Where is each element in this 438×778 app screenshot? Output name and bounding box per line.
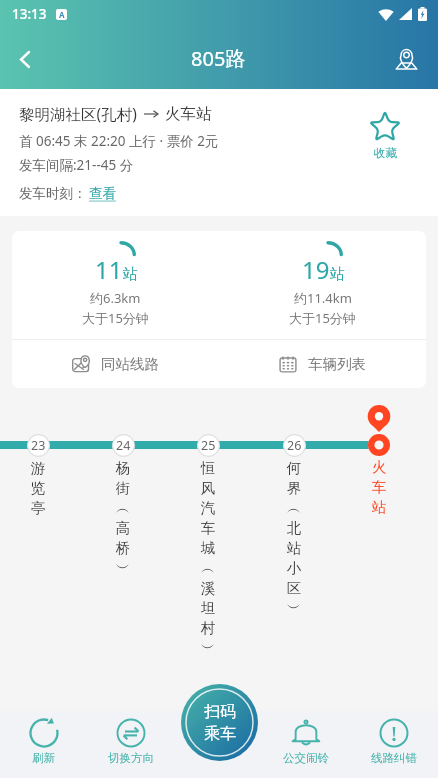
staticText: 26 xyxy=(287,437,302,454)
staticText: 24 xyxy=(116,437,131,454)
button[interactable]: 公交闹铃 xyxy=(262,711,350,778)
button[interactable]: 24 xyxy=(101,434,145,577)
staticText: 23 xyxy=(31,437,46,454)
staticText: 公交闹铃 xyxy=(283,751,329,765)
staticText: 站 xyxy=(123,265,138,284)
staticText: 约6.3km xyxy=(90,289,141,307)
button[interactable]: 火车站 xyxy=(357,405,401,516)
staticText: 约11.4km xyxy=(294,289,352,307)
staticText: 线路纠错 xyxy=(371,751,417,765)
button[interactable]: Back xyxy=(0,34,50,84)
button[interactable]: 车辆列表 xyxy=(219,340,426,388)
staticText: 19 xyxy=(302,253,330,286)
staticText: 黎明湖社区(孔村) xyxy=(19,103,137,124)
staticText: 11 xyxy=(95,253,123,286)
staticText: A xyxy=(59,9,65,20)
staticText: 刷新 xyxy=(32,751,55,765)
staticText: 站 xyxy=(330,265,345,284)
button[interactable]: 扫码 乘车 xyxy=(181,684,258,761)
button[interactable]: Favorite xyxy=(368,111,402,160)
staticText: 扫码 乘车 xyxy=(204,702,236,743)
button[interactable]: 同站线路 xyxy=(12,340,219,388)
staticText: 恒风汽车城︵溪坦村︶ xyxy=(200,459,216,657)
staticText: 大于15分钟 xyxy=(82,309,149,327)
staticText: 火车站 xyxy=(371,458,387,516)
staticText: 同站线路 xyxy=(101,355,159,373)
button[interactable]: 25 xyxy=(186,434,230,657)
staticText: 发车时刻： xyxy=(19,185,87,202)
button[interactable]: 线路纠错 xyxy=(350,711,438,778)
staticText: 大于15分钟 xyxy=(289,309,356,327)
staticText: 25 xyxy=(201,437,216,454)
staticText: 首 06:45 末 22:20 上行 · 票价 2元 xyxy=(19,132,219,150)
staticText: 切换方向 xyxy=(108,751,154,765)
staticText: 杨街︵高桥︶ xyxy=(115,459,131,577)
button[interactable]: 切换方向 xyxy=(87,711,174,778)
staticText: 805路 xyxy=(191,45,246,72)
button[interactable]: 26 xyxy=(272,434,316,617)
button[interactable]: 查看 xyxy=(89,185,116,202)
staticText: 车辆列表 xyxy=(308,355,366,373)
staticText: 何界︵北站小区︶ xyxy=(286,459,302,617)
staticText: 13:13 xyxy=(12,5,47,23)
staticText: 查看 xyxy=(89,185,116,202)
staticText: 发车间隔:21--45 分 xyxy=(19,156,134,174)
staticText: 收藏 xyxy=(374,146,397,160)
button[interactable]: 23 xyxy=(16,434,60,517)
button[interactable]: Map xyxy=(381,34,431,84)
button[interactable]: 刷新 xyxy=(0,711,87,778)
staticText: 游览亭 xyxy=(30,459,46,517)
staticText: 火车站 xyxy=(165,104,212,124)
